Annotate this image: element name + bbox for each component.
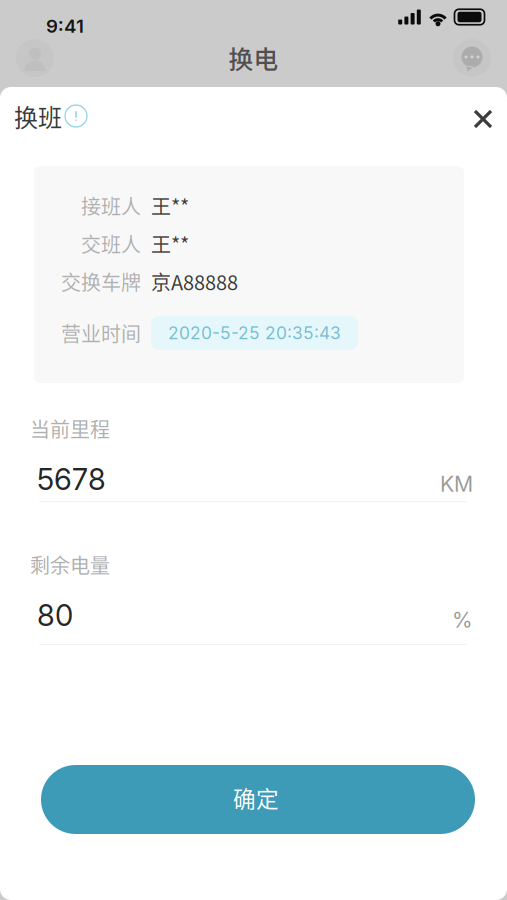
staticText: KM: [440, 471, 473, 497]
staticText: 确定: [233, 781, 279, 814]
staticText: 9:41: [46, 15, 84, 37]
staticText: 营业时间: [61, 318, 141, 347]
staticText: 80: [37, 597, 73, 633]
button[interactable]: Profile: [16, 39, 54, 77]
staticText: 剩余电量: [30, 550, 110, 579]
staticText: 接班人: [81, 191, 141, 220]
staticText: %: [452, 607, 473, 633]
button[interactable]: 确定: [41, 765, 475, 834]
staticText: 王**: [151, 229, 189, 258]
staticText: 王**: [151, 191, 189, 220]
staticText: 换电: [228, 40, 278, 76]
button[interactable]: Close: [455, 93, 501, 139]
staticText: 2020-5-25 20:35:43: [168, 322, 341, 343]
staticText: 交换车牌: [61, 267, 141, 296]
staticText: 当前里程: [30, 414, 110, 443]
staticText: 5678: [37, 461, 106, 497]
staticText: 京A88888: [151, 267, 238, 296]
staticText: 换班: [14, 99, 62, 133]
staticText: 交班人: [81, 229, 141, 258]
button[interactable]: Messages: [453, 39, 491, 77]
